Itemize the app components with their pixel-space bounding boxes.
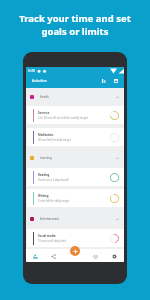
staticText: Reading xyxy=(38,173,50,177)
staticText: 2 hr 50 min 25 sec left for weekly targe… xyxy=(38,116,88,120)
staticText: Social media xyxy=(38,234,56,238)
button[interactable]: Reading xyxy=(27,168,124,186)
button[interactable]: Learning xyxy=(26,149,124,167)
staticText: 30 min left for daily target xyxy=(38,138,71,142)
staticText: Meditation xyxy=(38,133,54,137)
button[interactable]: Share xyxy=(50,253,56,259)
staticText: Activities xyxy=(32,78,47,83)
staticText: 5:39 xyxy=(28,68,36,73)
staticText: Track your time and set xyxy=(19,12,131,25)
button[interactable]: Meditation xyxy=(27,128,124,146)
staticText: You're on a 2-day streak! xyxy=(38,178,69,182)
button[interactable]: Exercise xyxy=(27,106,124,124)
staticText: 15 min until daily limit xyxy=(38,239,66,243)
button[interactable]: Profile xyxy=(32,253,38,259)
staticText: Exercise xyxy=(38,111,50,115)
button[interactable]: Settings xyxy=(111,253,117,259)
button[interactable]: Health xyxy=(26,88,124,106)
button[interactable]: Calendar xyxy=(112,77,120,85)
staticText: Entertainment xyxy=(40,217,59,221)
staticText: Writing xyxy=(38,194,49,198)
button[interactable]: Social media xyxy=(27,229,124,247)
button[interactable]: Add activity xyxy=(70,246,80,256)
button[interactable]: Entertainment xyxy=(26,210,124,228)
staticText: Learning xyxy=(40,156,52,160)
button[interactable]: Writing xyxy=(27,189,124,207)
staticText: Health xyxy=(40,95,49,99)
staticText: goals or limits xyxy=(41,25,109,38)
button[interactable]: Sort xyxy=(100,77,108,85)
staticText: 5 min left for daily target xyxy=(38,199,70,203)
button[interactable]: History xyxy=(92,253,98,259)
